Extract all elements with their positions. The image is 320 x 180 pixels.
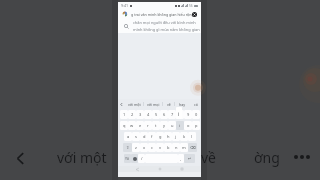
button[interactable]: i xyxy=(176,121,184,130)
staticText: z xyxy=(135,145,137,150)
staticText: r xyxy=(147,123,149,128)
staticText: với một xyxy=(128,102,141,107)
button[interactable]: với mọi xyxy=(144,99,162,109)
button[interactable]: Recents xyxy=(179,166,185,172)
button[interactable]: v xyxy=(156,143,164,152)
staticText: g xyxy=(159,134,162,139)
button[interactable]: l xyxy=(188,132,196,141)
staticText: 3 xyxy=(139,112,142,117)
button[interactable]: có xyxy=(190,99,201,109)
staticText: g trai văn minh không gian hiểu rộng| xyxy=(131,12,196,17)
button[interactable]: Home xyxy=(157,166,163,172)
button[interactable]: 7 xyxy=(168,110,176,119)
button[interactable]: Previous suggestions xyxy=(118,99,125,109)
staticText: 6 xyxy=(163,112,166,117)
button[interactable]: y xyxy=(160,121,168,130)
staticText: p xyxy=(195,123,198,128)
button[interactable]: 6 xyxy=(160,110,168,119)
button[interactable]: r xyxy=(144,121,152,130)
button[interactable]: q xyxy=(120,121,128,130)
staticText: d xyxy=(143,134,146,139)
button[interactable]: 5 xyxy=(152,110,160,119)
staticText: 1 xyxy=(123,112,126,117)
button[interactable]: a xyxy=(124,132,132,141)
button[interactable]: Back xyxy=(8,146,32,170)
staticText: f xyxy=(151,134,153,139)
button[interactable]: Emoji xyxy=(131,154,138,163)
button[interactable]: w xyxy=(128,121,136,130)
button[interactable]: 8 xyxy=(176,110,184,119)
button[interactable]: g xyxy=(156,132,164,141)
button[interactable]: ↵ xyxy=(184,154,195,163)
staticText: x xyxy=(143,145,146,150)
button[interactable]: o xyxy=(184,121,192,130)
button[interactable]: Back xyxy=(134,166,140,172)
button[interactable]: z xyxy=(132,143,140,152)
staticText: có xyxy=(194,102,198,107)
button[interactable]: e xyxy=(136,121,144,130)
staticText: chân mọi người đều với bình minh đưa ra xyxy=(133,20,201,25)
staticText: m xyxy=(182,145,186,150)
button[interactable]: với một xyxy=(125,99,143,109)
button[interactable]: ⌫ xyxy=(188,143,197,152)
staticText: v xyxy=(159,145,162,150)
button[interactable]: 2 xyxy=(128,110,136,119)
staticText: a xyxy=(127,134,130,139)
button[interactable]: chân mọi người đều với bình minh đưa ra xyxy=(118,19,201,33)
staticText: ⇧ xyxy=(126,145,130,150)
button[interactable]: s xyxy=(132,132,140,141)
button[interactable]: h xyxy=(164,132,172,141)
button[interactable]: hay xyxy=(175,99,190,109)
button[interactable]: / xyxy=(138,154,145,163)
staticText: ờng xyxy=(254,148,280,167)
button[interactable]: về xyxy=(163,99,174,109)
button[interactable]: ⇧ xyxy=(123,143,132,152)
staticText: về xyxy=(201,148,217,167)
staticText: 9:41 xyxy=(121,3,129,8)
staticText: e xyxy=(139,123,142,128)
staticText: với mọi xyxy=(147,102,160,107)
staticText: q xyxy=(123,123,126,128)
button[interactable]: c xyxy=(148,143,156,152)
button[interactable]: 9 xyxy=(184,110,192,119)
button[interactable]: u xyxy=(168,121,176,130)
staticText: s xyxy=(135,134,137,139)
staticText: 5 xyxy=(155,112,158,117)
staticText: j xyxy=(175,134,177,139)
staticText: u xyxy=(171,123,174,128)
button[interactable]: d xyxy=(140,132,148,141)
button[interactable]: 1 xyxy=(120,110,128,119)
button[interactable]: ?!# xyxy=(124,154,131,163)
staticText: k xyxy=(183,134,186,139)
button[interactable]: f xyxy=(148,132,156,141)
staticText: 56 xyxy=(189,4,193,8)
staticText: l xyxy=(191,134,193,139)
button[interactable]: , xyxy=(178,154,184,163)
button[interactable]: 3 xyxy=(136,110,144,119)
staticText: về xyxy=(167,102,171,107)
staticText: h xyxy=(167,134,170,139)
button[interactable]: 0 xyxy=(192,110,200,119)
button[interactable]: k xyxy=(180,132,188,141)
button[interactable]: j xyxy=(172,132,180,141)
staticText: ?!# xyxy=(125,157,130,161)
staticText: 7 xyxy=(171,112,174,117)
staticText: t xyxy=(155,123,157,128)
button[interactable]: g trai văn minh không gian hiểu rộng| xyxy=(118,9,201,19)
button[interactable]: More options xyxy=(288,147,316,167)
button[interactable]: t xyxy=(152,121,160,130)
staticText: 0 xyxy=(195,112,198,117)
staticText: o xyxy=(187,123,190,128)
button[interactable]: 4 xyxy=(144,110,152,119)
button[interactable]: Clear search xyxy=(192,12,197,17)
staticText: w xyxy=(130,123,134,128)
button[interactable]: x xyxy=(140,143,148,152)
staticText: ⌫ xyxy=(190,145,196,150)
button[interactable]: b xyxy=(164,143,172,152)
button[interactable]: p xyxy=(192,121,200,130)
button[interactable]: m xyxy=(180,143,188,152)
button[interactable]: n xyxy=(172,143,180,152)
staticText: y xyxy=(163,123,166,128)
